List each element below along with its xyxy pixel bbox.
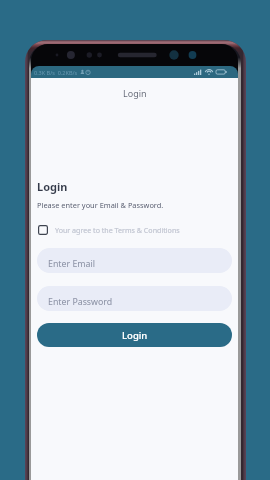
button[interactable]: Login xyxy=(37,323,232,347)
staticText: Enter Email xyxy=(48,258,95,270)
staticText: Enter Password xyxy=(48,296,113,308)
staticText: Login xyxy=(123,87,147,99)
staticText: Please enter your Email & Password. xyxy=(37,200,164,210)
button[interactable]: Your agree to the Terms & Conditions xyxy=(37,225,180,235)
button[interactable]: Enter Email xyxy=(37,248,232,273)
staticText: Your agree to the Terms & Conditions xyxy=(55,225,180,235)
staticText: Login xyxy=(37,179,68,194)
button[interactable]: Login xyxy=(31,78,238,108)
staticText: 0.3K B/s 0.2KB/s xyxy=(34,69,78,76)
staticText: Login xyxy=(122,329,148,342)
button[interactable]: Enter Password xyxy=(37,286,232,311)
